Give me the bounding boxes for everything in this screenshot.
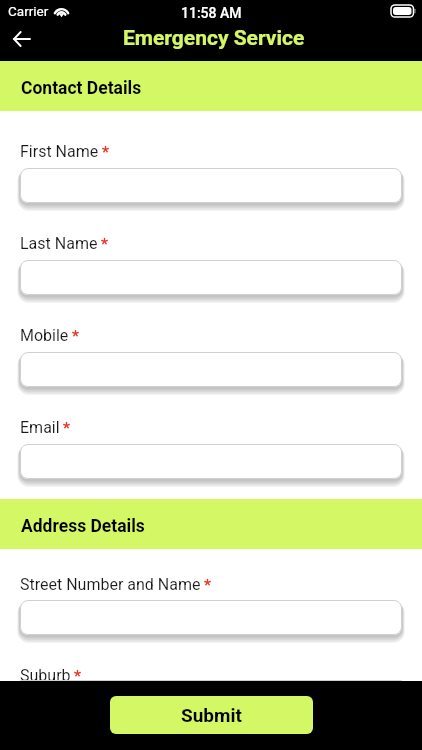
staticText: Submit (181, 704, 242, 726)
staticText: Carrier (8, 3, 49, 19)
staticText: Suburb (20, 666, 71, 681)
button[interactable] (20, 601, 402, 635)
button[interactable] (20, 445, 402, 479)
staticText: Address Details (21, 516, 145, 537)
staticText: First Name (20, 142, 99, 161)
staticText: Contact Details (21, 78, 142, 99)
button[interactable] (20, 261, 402, 295)
staticText: Mobile (20, 326, 69, 345)
staticText: 11:58 AM (181, 5, 242, 21)
staticText: Last Name (20, 234, 98, 253)
button[interactable]: Back (0, 19, 42, 59)
button[interactable] (20, 353, 402, 387)
staticText: Emergency Service (123, 26, 305, 51)
button[interactable]: Submit (110, 696, 313, 734)
staticText: Street Number and Name (20, 575, 201, 594)
staticText: Email (20, 418, 60, 437)
button[interactable] (20, 169, 402, 203)
